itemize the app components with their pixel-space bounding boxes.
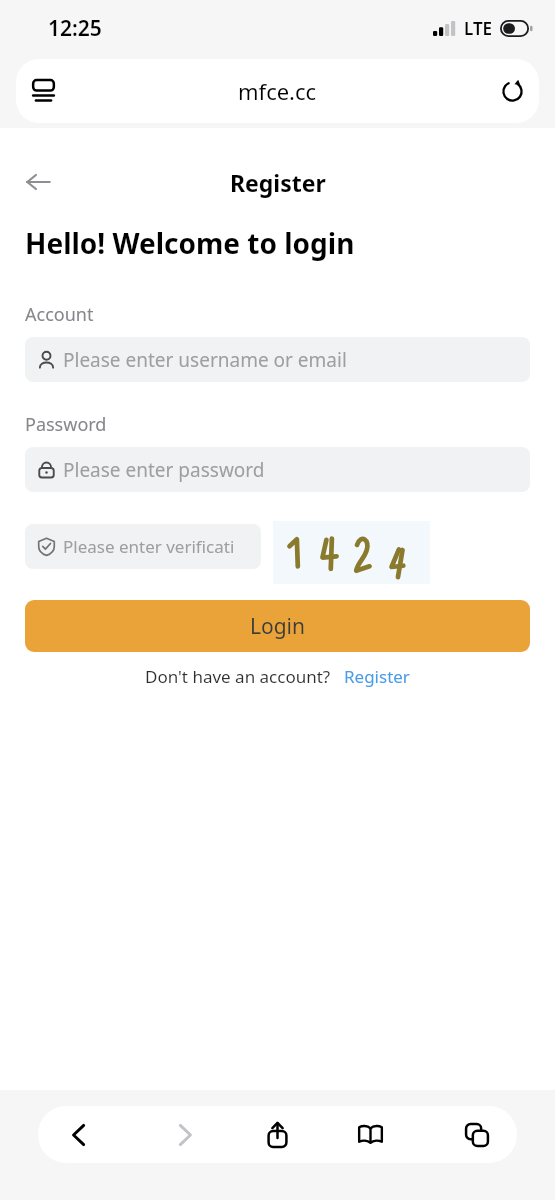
button[interactable]: Account <box>25 337 530 382</box>
button[interactable]: Register <box>344 665 410 688</box>
button[interactable]: Password <box>25 447 530 492</box>
staticText: Please enter verificati <box>63 535 235 558</box>
staticText: Register <box>230 167 326 198</box>
button[interactable]: Verification code <box>25 524 261 569</box>
button[interactable]: Share <box>249 1106 306 1163</box>
staticText: Account <box>25 302 94 327</box>
button[interactable]: Page settings <box>16 64 70 118</box>
staticText: Register <box>344 665 410 688</box>
button[interactable]: Back <box>50 1106 107 1163</box>
staticText: Please enter password <box>63 457 265 483</box>
button[interactable]: Refresh captcha <box>273 521 430 584</box>
staticText: mfce.cc <box>238 76 317 106</box>
staticText: Please enter username or email <box>63 347 347 373</box>
staticText: Login <box>250 612 306 641</box>
button[interactable]: Reload <box>485 64 539 118</box>
button[interactable]: Forward <box>156 1106 213 1163</box>
button[interactable]: Bookmarks <box>342 1106 399 1163</box>
staticText: LTE <box>464 17 493 40</box>
button[interactable]: Login <box>25 600 530 652</box>
staticText: Password <box>25 412 107 437</box>
button[interactable]: Back <box>12 156 64 208</box>
staticText: 12:25 <box>48 14 102 43</box>
staticText: Hello! Welcome to login <box>25 224 355 262</box>
staticText: Don't have an account? <box>145 665 331 688</box>
button[interactable]: Tabs <box>448 1106 505 1163</box>
